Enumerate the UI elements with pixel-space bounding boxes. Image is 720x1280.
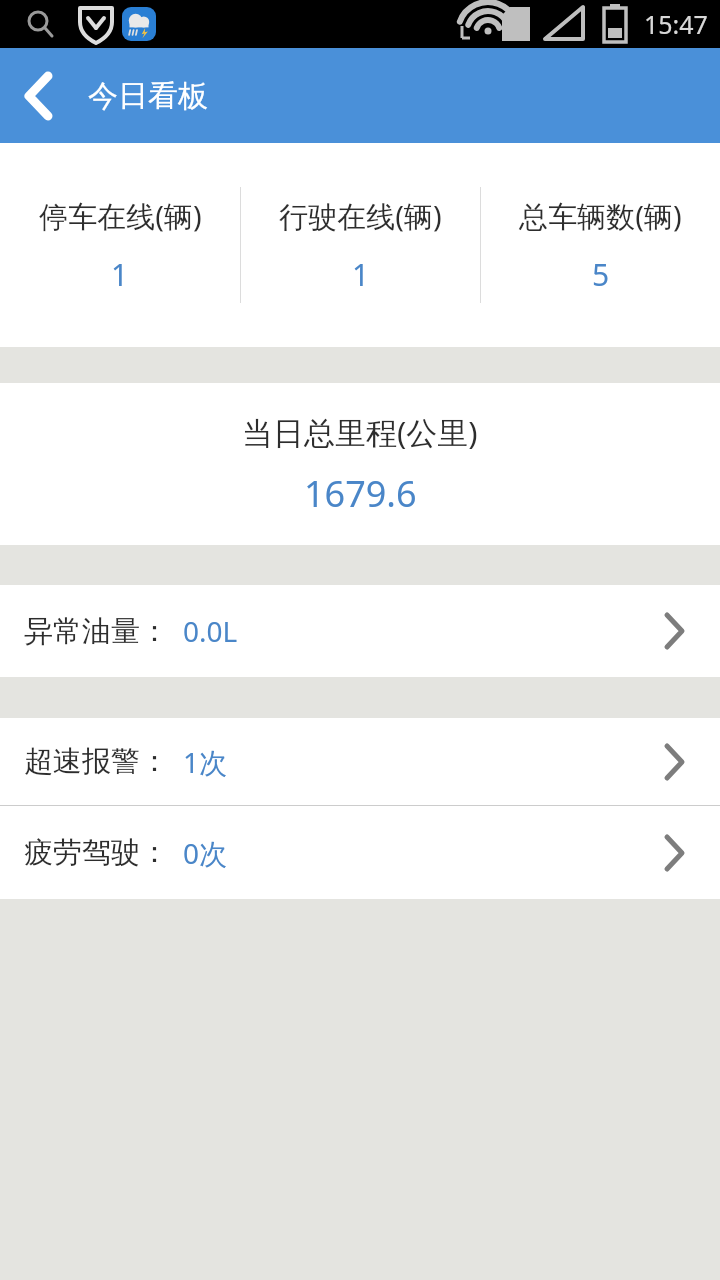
- staticText: 0.0L: [183, 612, 238, 650]
- staticText: 0次: [183, 834, 228, 872]
- staticText: 异常油量：: [24, 613, 169, 650]
- button[interactable]: 超速报警：: [0, 718, 720, 805]
- button[interactable]: 当日总里程(公里): [0, 383, 720, 545]
- button[interactable]: Back: [0, 60, 72, 132]
- staticText: 超速报警：: [24, 743, 169, 780]
- staticText: 当日总里程(公里): [242, 411, 478, 453]
- staticText: 15:47: [644, 7, 708, 41]
- staticText: 停车在线(辆): [39, 196, 202, 236]
- staticText: 1次: [183, 743, 228, 781]
- button[interactable]: 停车在线(辆): [0, 143, 240, 347]
- staticText: 5: [592, 254, 610, 295]
- staticText: 总车辆数(辆): [519, 196, 682, 236]
- staticText: 1: [111, 254, 129, 295]
- staticText: 1679.6: [304, 469, 417, 518]
- staticText: 疲劳驾驶：: [24, 834, 169, 871]
- staticText: 今日看板: [88, 77, 208, 115]
- button[interactable]: 疲劳驾驶：: [0, 806, 720, 899]
- button[interactable]: 行驶在线(辆): [241, 143, 480, 347]
- button[interactable]: 异常油量：: [0, 585, 720, 677]
- staticText: 行驶在线(辆): [279, 196, 442, 236]
- staticText: 1: [352, 254, 370, 295]
- button[interactable]: 总车辆数(辆): [481, 143, 720, 347]
